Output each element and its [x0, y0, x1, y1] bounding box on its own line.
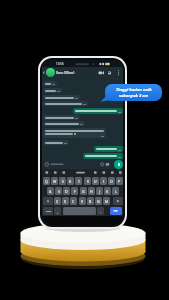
- staticText: ?123: [46, 210, 51, 213]
- staticText: Tinggi badan naik: [116, 87, 152, 93]
- staticText: G: [82, 189, 85, 194]
- button[interactable]: [73, 108, 123, 114]
- staticText: 13:56: [56, 62, 64, 66]
- staticText: W: [53, 179, 57, 184]
- button[interactable]: D: [63, 187, 70, 195]
- button[interactable]: F: [71, 187, 78, 195]
- button[interactable]: [83, 153, 123, 159]
- staticText: O: [110, 179, 113, 184]
- staticText: I: [103, 179, 105, 184]
- staticText: ^: [47, 199, 50, 204]
- staticText: D: [65, 189, 68, 194]
- staticText: Y: [87, 179, 89, 184]
- staticText: N: [97, 199, 100, 204]
- staticText: J: [99, 189, 100, 194]
- staticText: Z: [56, 199, 59, 204]
- staticText: K: [106, 189, 109, 194]
- button[interactable]: ,: [54, 207, 61, 215]
- button[interactable]: [43, 128, 106, 138]
- button[interactable]: Ibnu (Klien): [56, 70, 75, 75]
- button[interactable]: O: [108, 177, 115, 185]
- button[interactable]: A: [47, 187, 54, 195]
- button[interactable]: [43, 81, 57, 86]
- button[interactable]: C: [70, 197, 77, 205]
- staticText: Q: [45, 179, 48, 184]
- staticText: S: [58, 189, 60, 194]
- staticText: B: [89, 199, 92, 204]
- button[interactable]: V: [79, 197, 86, 205]
- button[interactable]: S: [55, 187, 62, 195]
- button[interactable]: [43, 140, 69, 145]
- button[interactable]: ‹: [43, 68, 45, 76]
- button[interactable]: [63, 207, 96, 215]
- button[interactable]: K: [104, 187, 111, 195]
- button[interactable]: X: [62, 197, 69, 205]
- button[interactable]: L: [112, 187, 119, 195]
- staticText: A: [49, 189, 52, 194]
- button[interactable]: [43, 121, 85, 126]
- staticText: x: [117, 199, 119, 203]
- button[interactable]: .: [97, 207, 104, 215]
- button[interactable]: B: [87, 197, 94, 205]
- button[interactable]: J: [96, 187, 103, 195]
- staticText: ,: [57, 209, 58, 214]
- button[interactable]: H: [88, 187, 95, 195]
- staticText: C: [72, 199, 75, 204]
- button[interactable]: I: [100, 177, 107, 185]
- staticText: sebanyak 3 cm: [119, 93, 149, 99]
- button[interactable]: R: [67, 177, 74, 185]
- button[interactable]: Y: [84, 177, 91, 185]
- button[interactable]: [46, 68, 55, 77]
- button[interactable]: P: [116, 177, 123, 185]
- staticText: T: [78, 179, 80, 184]
- staticText: M: [105, 199, 109, 204]
- button[interactable]: Tinggi badan naik: [105, 84, 162, 101]
- button[interactable]: E: [59, 177, 66, 185]
- button[interactable]: Z: [54, 197, 61, 205]
- button[interactable]: [94, 146, 123, 152]
- button[interactable]: [114, 160, 123, 169]
- button[interactable]: Q: [43, 177, 50, 185]
- staticText: U: [94, 179, 97, 184]
- button[interactable]: [43, 115, 80, 120]
- staticText: E: [62, 179, 64, 184]
- button[interactable]: x: [113, 197, 123, 205]
- button[interactable]: [43, 95, 80, 100]
- button[interactable]: [43, 161, 113, 169]
- staticText: .: [100, 209, 101, 214]
- button[interactable]: U: [92, 177, 99, 185]
- staticText: L: [115, 189, 117, 194]
- staticText: V: [81, 199, 84, 204]
- button[interactable]: ^: [43, 197, 53, 205]
- button[interactable]: W: [51, 177, 58, 185]
- button[interactable]: [43, 88, 62, 93]
- staticText: P: [118, 179, 121, 184]
- staticText: H: [90, 189, 93, 194]
- staticText: X: [64, 199, 67, 204]
- staticText: R: [69, 179, 72, 184]
- button[interactable]: ?123: [43, 207, 53, 215]
- button[interactable]: [42, 67, 123, 79]
- button[interactable]: N: [95, 197, 102, 205]
- button[interactable]: [43, 101, 88, 106]
- button[interactable]: T: [75, 177, 82, 185]
- button[interactable]: [110, 207, 122, 215]
- button[interactable]: M: [103, 197, 110, 205]
- staticText: F: [74, 189, 76, 194]
- button[interactable]: G: [80, 187, 87, 195]
